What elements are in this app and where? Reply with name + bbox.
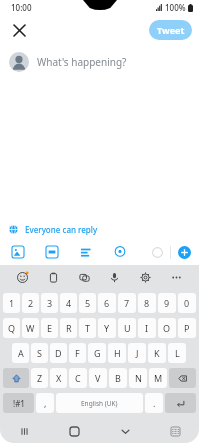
button[interactable]: Emoji (14, 269, 31, 286)
button[interactable]: !#1 (3, 393, 34, 413)
staticText: P (184, 322, 190, 334)
staticText: R (66, 322, 72, 334)
staticText: Tweet (157, 24, 185, 36)
button[interactable]: K (148, 343, 166, 363)
button[interactable]: D (50, 343, 67, 363)
button[interactable]: S (31, 343, 48, 363)
staticText: J (136, 347, 139, 359)
button[interactable]: E (41, 318, 58, 338)
staticText: V (95, 372, 101, 384)
staticText: A (18, 347, 24, 359)
button[interactable]: P (178, 318, 196, 338)
button[interactable]: Stickers (76, 269, 93, 286)
button[interactable]: T (79, 318, 96, 338)
button[interactable]: Clipboard (45, 269, 62, 286)
button[interactable]: , (36, 393, 54, 413)
staticText: 1 (9, 297, 15, 309)
button[interactable]: Shift (3, 368, 29, 388)
button[interactable]: Add tweet (178, 246, 191, 259)
button[interactable]: C (69, 368, 87, 388)
button[interactable]: Z (31, 368, 48, 388)
button[interactable]: Settings (137, 269, 154, 286)
staticText: 4 (66, 297, 72, 309)
button[interactable]: 4 (60, 293, 77, 313)
button[interactable]: Profile (9, 52, 29, 72)
button[interactable]: Poll (78, 244, 94, 260)
button[interactable]: Enter (165, 393, 196, 413)
staticText: S (37, 347, 42, 359)
staticText: W (26, 322, 35, 334)
button[interactable]: Recents (14, 421, 34, 441)
staticText: English (UK) (81, 399, 118, 408)
staticText: What's happening? (37, 55, 127, 69)
button[interactable]: Keyboard layout (165, 421, 185, 441)
button[interactable]: Hide keyboard (115, 421, 135, 441)
staticText: !#1 (13, 398, 25, 409)
button[interactable]: L (168, 343, 186, 363)
button[interactable]: X (50, 368, 67, 388)
staticText: Q (8, 322, 16, 334)
button[interactable]: Voice input (106, 269, 123, 286)
staticText: , (44, 397, 47, 409)
button[interactable]: Media (10, 244, 26, 260)
button[interactable]: Q (3, 318, 20, 338)
staticText: E (47, 322, 53, 334)
staticText: 8 (144, 297, 150, 309)
button[interactable]: M (149, 368, 167, 388)
button[interactable]: I (138, 318, 156, 338)
button[interactable]: J (128, 343, 146, 363)
button[interactable]: 6 (98, 293, 116, 313)
staticText: B (115, 372, 121, 384)
staticText: 10:00 (11, 2, 32, 13)
button[interactable]: B (109, 368, 127, 388)
staticText: 5 (85, 297, 91, 309)
staticText: 2 (28, 297, 34, 309)
button[interactable]: . (145, 393, 163, 413)
button[interactable]: A (12, 343, 29, 363)
staticText: M (154, 372, 163, 384)
button[interactable]: 1 (3, 293, 20, 313)
button[interactable]: Location (112, 244, 128, 260)
button[interactable]: 7 (118, 293, 136, 313)
staticText: K (154, 347, 160, 359)
staticText: Z (37, 372, 43, 384)
button[interactable]: English (UK) (56, 393, 143, 413)
button[interactable]: R (60, 318, 77, 338)
button[interactable]: G (88, 343, 106, 363)
staticText: G (94, 347, 101, 359)
button[interactable]: 3 (41, 293, 58, 313)
button[interactable]: Y (98, 318, 116, 338)
button[interactable]: More options (168, 269, 185, 286)
button[interactable]: 2 (22, 293, 39, 313)
staticText: 6 (104, 297, 110, 309)
staticText: U (124, 322, 131, 334)
button[interactable]: Backspace (169, 368, 196, 388)
button[interactable]: O (158, 318, 176, 338)
button[interactable]: V (89, 368, 107, 388)
button[interactable]: 0 (178, 293, 196, 313)
button[interactable]: 8 (138, 293, 156, 313)
staticText: . (153, 397, 156, 409)
button[interactable]: 5 (79, 293, 96, 313)
button[interactable]: Everyone can reply (9, 219, 199, 239)
button[interactable]: Close (6, 17, 32, 43)
staticText: C (75, 372, 81, 384)
button[interactable]: 9 (158, 293, 176, 313)
button[interactable]: GIF (44, 244, 60, 260)
button[interactable]: F (69, 343, 86, 363)
button[interactable]: Home (64, 421, 84, 441)
staticText: D (55, 347, 62, 359)
button[interactable]: H (108, 343, 126, 363)
staticText: O (163, 322, 171, 334)
button[interactable]: U (118, 318, 136, 338)
button[interactable]: N (129, 368, 147, 388)
staticText: 7 (124, 297, 130, 309)
button[interactable]: W (22, 318, 39, 338)
staticText: X (56, 372, 62, 384)
staticText: 9 (164, 297, 170, 309)
button[interactable]: Tweet (149, 20, 192, 40)
staticText: 0 (184, 297, 190, 309)
staticText: Y (104, 322, 110, 334)
staticText: I (145, 322, 149, 334)
staticText: 100% (165, 2, 186, 13)
